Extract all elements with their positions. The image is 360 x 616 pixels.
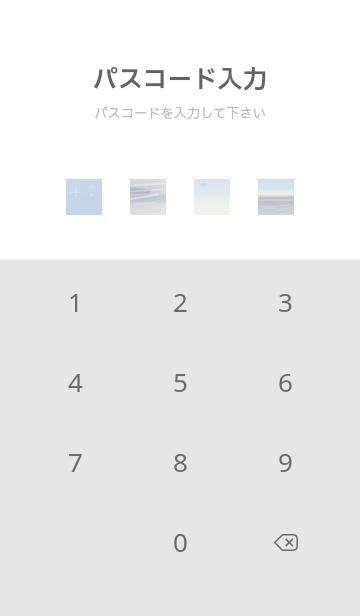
- staticText: 5: [173, 364, 188, 399]
- button[interactable]: 7: [22, 421, 128, 501]
- staticText: 8: [173, 444, 188, 479]
- button[interactable]: 6: [233, 341, 338, 421]
- staticText: 7: [68, 444, 83, 479]
- button[interactable]: 4: [22, 341, 128, 421]
- button[interactable]: 2: [128, 261, 233, 341]
- button[interactable]: [258, 179, 294, 215]
- staticText: 9: [278, 444, 293, 479]
- button[interactable]: 0: [128, 501, 233, 581]
- staticText: 4: [68, 364, 83, 399]
- button[interactable]: Delete: [233, 501, 338, 581]
- button[interactable]: 9: [233, 421, 338, 501]
- button[interactable]: 8: [128, 421, 233, 501]
- staticText: 2: [173, 284, 188, 319]
- staticText: パスコードを入力して下さい: [94, 104, 266, 124]
- button[interactable]: 1: [22, 261, 128, 341]
- staticText: 1: [68, 284, 83, 319]
- button[interactable]: [130, 179, 166, 215]
- button[interactable]: 5: [128, 341, 233, 421]
- staticText: 0: [173, 524, 188, 559]
- staticText: パスコード入力: [92, 62, 268, 99]
- button[interactable]: 3: [233, 261, 338, 341]
- button[interactable]: [194, 179, 230, 215]
- staticText: 6: [278, 364, 293, 399]
- staticText: 3: [278, 284, 293, 319]
